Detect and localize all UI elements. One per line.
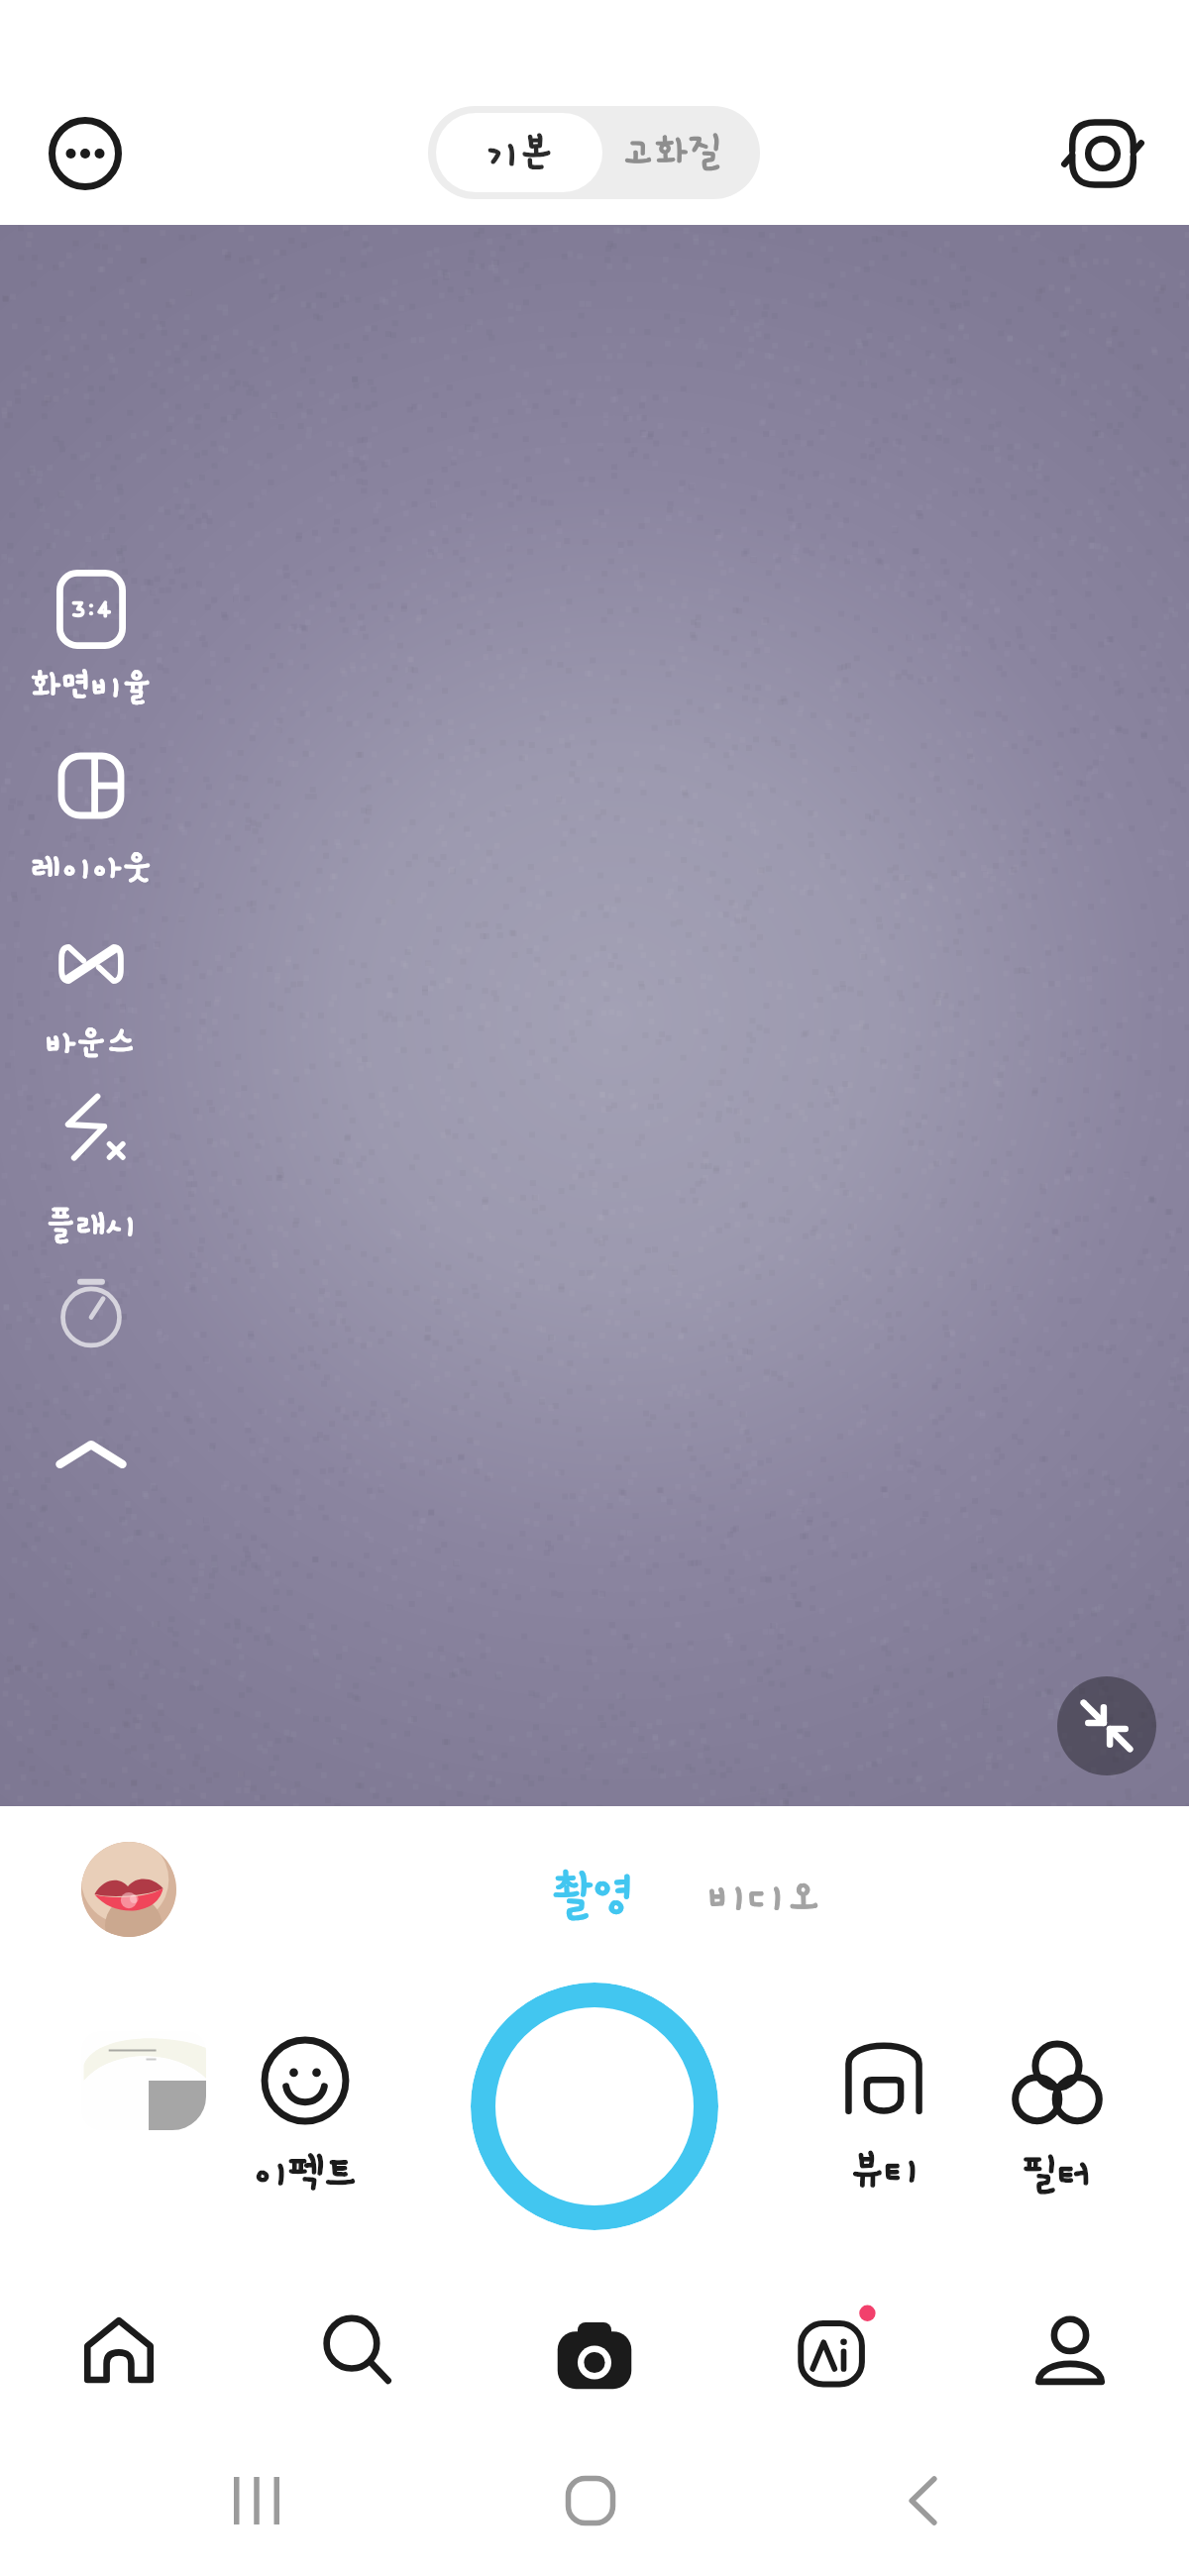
button[interactable]: AI assistant bbox=[753, 2277, 912, 2425]
button[interactable]: 바운스 bbox=[12, 912, 170, 1079]
button[interactable]: Back bbox=[877, 2455, 968, 2546]
staticText: 이펙트 bbox=[253, 2151, 359, 2195]
button[interactable]: Home bbox=[543, 2453, 638, 2548]
staticText: 필터 bbox=[1023, 2154, 1093, 2198]
staticText: 이펙트 bbox=[253, 2151, 359, 2195]
button[interactable]: 고화질 bbox=[593, 106, 750, 199]
staticText: 바운스 bbox=[46, 1023, 137, 1061]
button[interactable]: 촬영 bbox=[503, 1848, 682, 1943]
staticText: 고화질 bbox=[621, 132, 722, 173]
staticText: 레이아웃 bbox=[31, 848, 153, 886]
button[interactable]: Home bbox=[40, 2277, 198, 2425]
staticText: 화면비율 bbox=[31, 667, 153, 704]
staticText: 화면비율 bbox=[31, 667, 153, 704]
button[interactable]: 이펙트 bbox=[226, 2024, 384, 2212]
staticText: 기본 bbox=[486, 132, 553, 173]
button[interactable]: Camera bbox=[515, 2277, 674, 2425]
button[interactable]: Search bbox=[277, 2277, 436, 2425]
staticText: 촬영 bbox=[550, 1870, 635, 1922]
staticText: 뷰티 bbox=[849, 2148, 919, 2192]
staticText: 플래시 bbox=[46, 1206, 137, 1243]
staticText: 필터 bbox=[1023, 2154, 1093, 2198]
button[interactable]: Timer bbox=[37, 1256, 146, 1365]
button[interactable]: Profile bbox=[991, 2277, 1149, 2425]
button[interactable]: Recents bbox=[211, 2455, 302, 2546]
staticText: 기본 bbox=[486, 132, 553, 173]
button[interactable]: 비디오 bbox=[677, 1848, 855, 1943]
button[interactable]: More options bbox=[36, 104, 135, 203]
staticText: 비디오 bbox=[708, 1872, 823, 1919]
button[interactable]: 화면비율 bbox=[12, 558, 170, 722]
staticText: 플래시 bbox=[46, 1206, 137, 1243]
button[interactable]: Selected filter bbox=[81, 1842, 176, 1937]
staticText: 바운스 bbox=[46, 1023, 137, 1061]
button[interactable]: Switch camera bbox=[1053, 104, 1152, 203]
button[interactable]: Expand tools bbox=[37, 1400, 146, 1509]
button[interactable]: Gallery bbox=[81, 2031, 206, 2130]
staticText: 촬영 bbox=[550, 1870, 635, 1922]
button[interactable]: 필터 bbox=[978, 2027, 1136, 2215]
button[interactable]: 플래시 bbox=[12, 1081, 170, 1261]
staticText: 고화질 bbox=[621, 132, 722, 173]
button[interactable]: 뷰티 bbox=[805, 2021, 963, 2209]
staticText: 레이아웃 bbox=[31, 848, 153, 886]
button[interactable]: 기본 bbox=[436, 113, 602, 192]
button[interactable]: Shutter bbox=[471, 1983, 718, 2230]
staticText: 뷰티 bbox=[849, 2148, 919, 2192]
button[interactable]: Shrink preview bbox=[1057, 1676, 1156, 1775]
button[interactable]: 레이아웃 bbox=[12, 734, 170, 904]
staticText: 비디오 bbox=[708, 1872, 823, 1919]
